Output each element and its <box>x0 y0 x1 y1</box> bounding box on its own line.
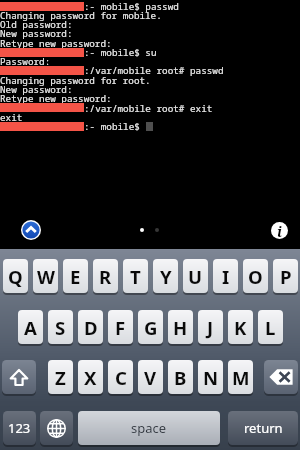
button[interactable]: T <box>123 259 148 293</box>
button[interactable]: J <box>198 310 223 344</box>
button[interactable]: Y <box>153 259 178 293</box>
button[interactable]: R <box>93 259 118 293</box>
button[interactable]: A <box>18 310 43 344</box>
button[interactable]: Shift <box>2 360 36 394</box>
button[interactable]: S <box>48 310 73 344</box>
staticText: :/var/mobile root# passwd <box>84 64 224 77</box>
button[interactable]: Z <box>48 360 73 394</box>
button[interactable]: K <box>228 310 253 344</box>
staticText: E <box>70 264 81 289</box>
button[interactable]: C <box>108 360 133 394</box>
button[interactable]: U <box>183 259 208 293</box>
staticText: O <box>248 264 263 289</box>
staticText: Changing password for mobile. <box>0 9 162 22</box>
button[interactable]: D <box>78 310 103 344</box>
button[interactable]: E <box>63 259 88 293</box>
button[interactable]: B <box>168 360 193 394</box>
staticText: I <box>222 264 230 289</box>
staticText: B <box>174 365 187 390</box>
staticText: N <box>203 365 219 390</box>
staticText: 123 <box>8 419 31 437</box>
staticText: Old password: <box>0 18 73 31</box>
staticText: X <box>84 365 97 390</box>
staticText: D <box>84 315 98 340</box>
button[interactable]: Info <box>271 222 288 239</box>
staticText: New password: <box>0 83 73 96</box>
button[interactable]: Numbers <box>3 411 36 445</box>
staticText: Retype new password: <box>0 37 112 50</box>
staticText: C <box>115 365 127 390</box>
staticText: :- mobile$ <box>84 120 140 133</box>
button[interactable]: O <box>243 259 268 293</box>
button[interactable]: space <box>78 411 220 445</box>
button[interactable]: M <box>228 360 253 394</box>
button[interactable]: V <box>138 360 163 394</box>
staticText: New password: <box>0 27 73 40</box>
staticText: Changing password for root. <box>0 74 151 87</box>
staticText: L <box>265 315 276 340</box>
button[interactable]: N <box>198 360 223 394</box>
staticText: H <box>173 315 188 340</box>
button[interactable]: G <box>138 310 163 344</box>
staticText: :/var/mobile root# exit <box>84 102 213 115</box>
staticText: V <box>144 365 157 390</box>
staticText: :- mobile$ su <box>84 46 157 59</box>
staticText: Retype new password: <box>0 92 112 105</box>
staticText: Y <box>160 264 172 289</box>
staticText: space <box>131 419 167 437</box>
button[interactable]: return <box>228 411 298 445</box>
staticText: exit <box>0 111 23 124</box>
staticText: M <box>232 365 250 390</box>
staticText: R <box>99 264 112 289</box>
staticText: W <box>37 264 55 289</box>
button[interactable]: Switch keyboard <box>40 411 73 445</box>
staticText: Z <box>55 365 66 390</box>
button[interactable]: Delete <box>264 360 298 394</box>
staticText: return <box>244 419 283 437</box>
staticText: T <box>130 264 141 289</box>
staticText: Q <box>8 264 23 289</box>
button[interactable]: Q <box>3 259 28 293</box>
staticText: S <box>55 315 66 340</box>
staticText: U <box>188 264 203 289</box>
staticText: :- mobile$ passwd <box>84 0 179 13</box>
button[interactable]: H <box>168 310 193 344</box>
button[interactable]: I <box>213 259 238 293</box>
staticText: G <box>144 315 158 340</box>
button[interactable]: F <box>108 310 133 344</box>
staticText: J <box>207 315 214 340</box>
staticText: i <box>277 222 282 239</box>
staticText: Password: <box>0 55 51 68</box>
staticText: A <box>24 315 37 340</box>
button[interactable]: L <box>258 310 283 344</box>
staticText: P <box>280 264 292 289</box>
staticText: F <box>115 315 126 340</box>
staticText: K <box>234 315 247 340</box>
button[interactable]: X <box>78 360 103 394</box>
button[interactable]: W <box>33 259 58 293</box>
button[interactable]: Scroll up <box>21 220 41 240</box>
button[interactable]: P <box>273 259 298 293</box>
